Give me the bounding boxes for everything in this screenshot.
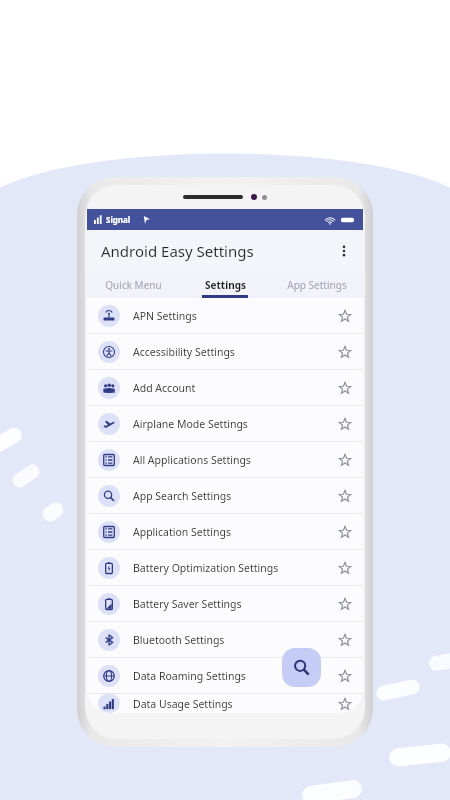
button[interactable]: Application Settings: [87, 514, 363, 549]
button[interactable]: Quick Menu: [87, 272, 179, 298]
staticText: Data Usage Settings: [133, 697, 233, 711]
button[interactable]: Favorite App Search Settings: [331, 482, 359, 510]
button[interactable]: Favorite Data Roaming Settings: [331, 662, 359, 690]
button[interactable]: Favorite Bluetooth Settings: [331, 626, 359, 654]
button[interactable]: Favorite Application Settings: [331, 518, 359, 546]
staticText: Data Roaming Settings: [133, 669, 246, 683]
staticText: APN Settings: [133, 309, 197, 323]
button[interactable]: Battery Optimization Settings: [87, 550, 363, 585]
staticText: App Settings: [287, 278, 347, 292]
button[interactable]: Accessibility Settings: [87, 334, 363, 369]
button[interactable]: Favorite Accessibility Settings: [331, 338, 359, 366]
button[interactable]: Favorite Add Account: [331, 374, 359, 402]
button[interactable]: Favorite Battery Optimization Settings: [331, 554, 359, 582]
button[interactable]: All Applications Settings: [87, 442, 363, 477]
staticText: App Search Settings: [133, 489, 232, 503]
staticText: All Applications Settings: [133, 453, 251, 467]
staticText: Application Settings: [133, 525, 231, 539]
button[interactable]: Data Usage Settings: [87, 694, 363, 713]
staticText: Add Account: [133, 381, 196, 395]
button[interactable]: App Settings: [271, 272, 363, 298]
button[interactable]: APN Settings: [87, 298, 363, 333]
staticText: Battery Saver Settings: [133, 597, 242, 611]
button[interactable]: Airplane Mode Settings: [87, 406, 363, 441]
staticText: Quick Menu: [105, 278, 162, 292]
staticText: Signal: [106, 214, 131, 225]
button[interactable]: Data Roaming Settings: [87, 658, 363, 693]
button[interactable]: Favorite Data Usage Settings: [331, 694, 359, 713]
button[interactable]: Search: [282, 648, 321, 687]
staticText: Accessibility Settings: [133, 345, 235, 359]
staticText: Airplane Mode Settings: [133, 417, 248, 431]
staticText: Android Easy Settings: [101, 241, 254, 261]
button[interactable]: Add Account: [87, 370, 363, 405]
button[interactable]: Settings: [179, 272, 271, 298]
staticText: Settings: [205, 278, 246, 292]
button[interactable]: Favorite All Applications Settings: [331, 446, 359, 474]
button[interactable]: Favorite Airplane Mode Settings: [331, 410, 359, 438]
staticText: Bluetooth Settings: [133, 633, 225, 647]
button[interactable]: Favorite APN Settings: [331, 302, 359, 330]
button[interactable]: More options: [329, 236, 359, 266]
button[interactable]: App Search Settings: [87, 478, 363, 513]
button[interactable]: Favorite Battery Saver Settings: [331, 590, 359, 618]
staticText: Battery Optimization Settings: [133, 561, 279, 575]
button[interactable]: Bluetooth Settings: [87, 622, 363, 657]
button[interactable]: Battery Saver Settings: [87, 586, 363, 621]
